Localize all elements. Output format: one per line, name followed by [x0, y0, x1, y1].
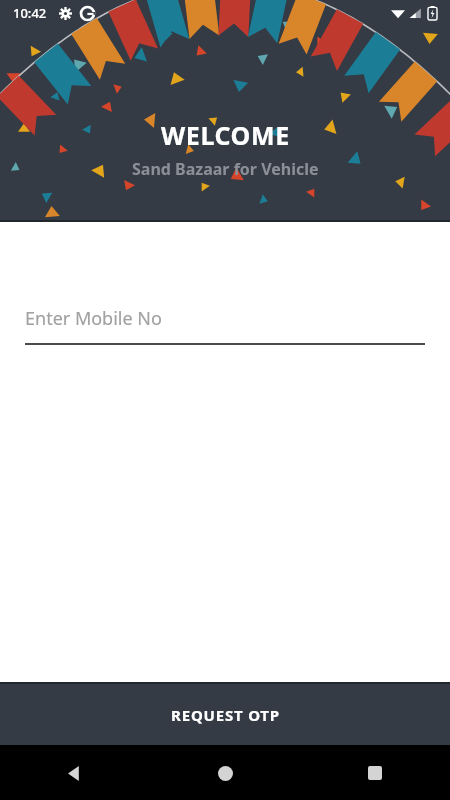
button[interactable]: Back [55, 753, 95, 793]
staticText: 10:42 [13, 4, 47, 22]
staticText: Enter Mobile No [25, 306, 162, 331]
staticText: Sand Bazaar for Vehicle [132, 158, 319, 180]
button[interactable]: Enter Mobile No [25, 306, 425, 345]
staticText: WELCOME [161, 118, 290, 152]
button[interactable]: Home [205, 753, 245, 793]
staticText: REQUEST OTP [171, 705, 280, 725]
button[interactable]: Recent apps [355, 753, 395, 793]
button[interactable]: REQUEST OTP [0, 684, 450, 745]
